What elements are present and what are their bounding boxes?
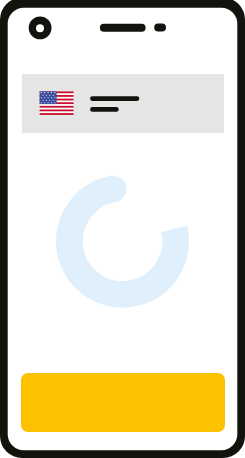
- button[interactable]: Continue: [21, 373, 225, 432]
- button[interactable]: Select language: [22, 74, 224, 133]
